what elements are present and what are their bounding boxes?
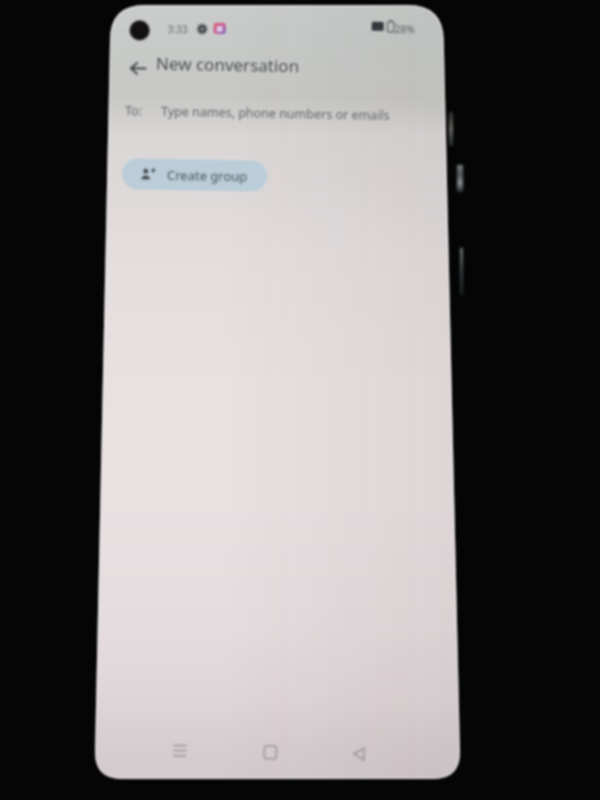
staticText: 3:33 — [167, 22, 188, 36]
button[interactable]: Back — [119, 49, 157, 88]
button[interactable]: Recent apps — [159, 730, 200, 771]
staticText: New conversation — [156, 52, 300, 77]
button[interactable]: Home — [250, 732, 291, 772]
staticText: To: — [125, 102, 142, 119]
button[interactable]: Create group — [122, 158, 267, 192]
staticText: 28% — [394, 22, 415, 36]
button[interactable]: Back — [338, 733, 379, 774]
staticText: Type names, phone numbers or emails — [161, 103, 390, 124]
staticText: Create group — [167, 166, 248, 185]
